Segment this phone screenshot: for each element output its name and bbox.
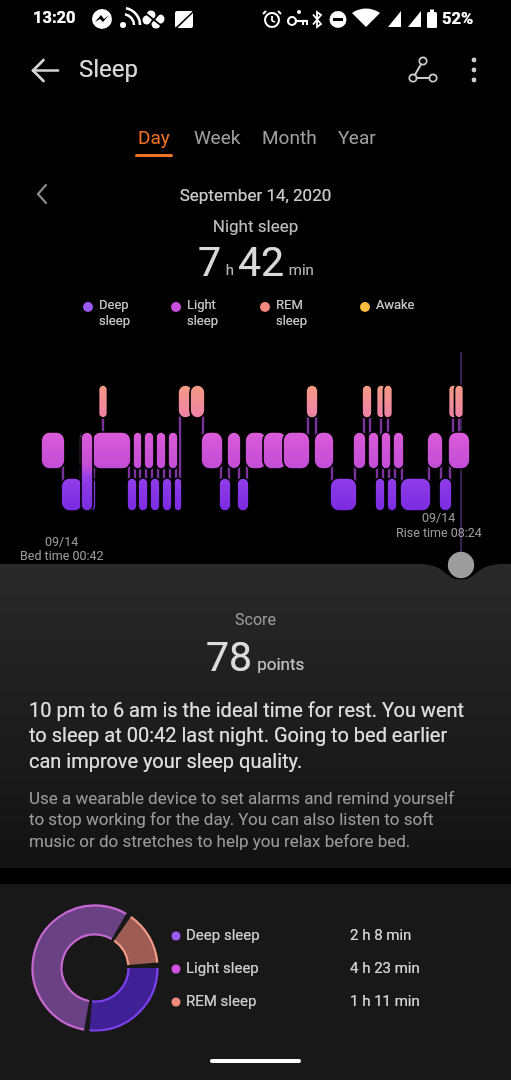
staticText: Awake [376,297,415,312]
button[interactable]: Day [135,126,173,157]
staticText: points [253,654,305,674]
staticText: Light sleep [187,297,218,328]
staticText: 42 [238,238,285,286]
staticText: 09/14 [45,534,79,549]
staticText: Bed time 00:42 [20,548,104,563]
staticText: September 14, 2020 [0,185,511,205]
staticText: 09/14 [422,510,456,525]
button[interactable]: Year [338,126,376,148]
staticText: h [222,261,238,279]
staticText: Use a wearable device to set alarms and … [29,788,455,852]
staticText: REM sleep [186,992,257,1010]
button[interactable]: Week [194,126,241,148]
button[interactable]: Month [262,126,317,148]
staticText: Score [0,610,511,629]
staticText: 2 h 8 min [350,926,412,944]
staticText: Day [138,126,170,148]
staticText: Sleep [79,55,139,83]
staticText: 13:20 [33,8,76,27]
staticText: 52% [442,9,474,28]
staticText: 7 [198,238,222,286]
button[interactable] [458,50,494,90]
button[interactable] [21,46,69,94]
staticText: 78 [206,633,253,681]
button[interactable] [28,180,58,210]
staticText: Rise time 08:24 [396,525,482,540]
staticText: 10 pm to 6 am is the ideal time for rest… [29,698,465,773]
staticText: REM sleep [276,297,307,328]
button[interactable] [399,50,443,90]
staticText: Deep sleep [99,297,130,328]
staticText: 4 h 23 min [350,959,420,977]
staticText: Light sleep [186,959,259,977]
staticText: 1 h 11 min [350,992,420,1010]
staticText: min [285,261,314,279]
staticText: Deep sleep [186,926,260,944]
staticText: Night sleep [0,216,511,236]
